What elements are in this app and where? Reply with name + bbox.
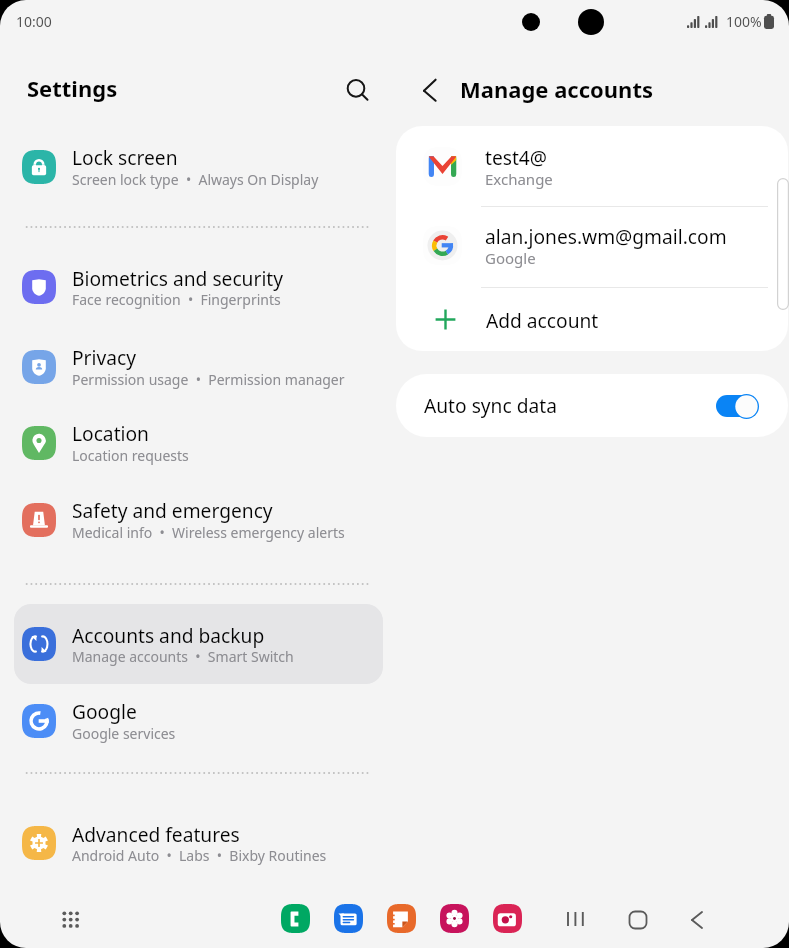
- staticText: 100%: [726, 12, 762, 31]
- button[interactable]: [396, 288, 788, 351]
- staticText: test4@: [485, 144, 548, 170]
- button[interactable]: [14, 604, 383, 684]
- staticText: Add account: [486, 307, 599, 333]
- staticText: Permission usage • Permission manager: [72, 370, 345, 389]
- button[interactable]: Home: [621, 903, 655, 937]
- staticText: Exchange: [485, 169, 553, 189]
- button[interactable]: Notes: [387, 904, 416, 933]
- staticText: Accounts and backup: [72, 622, 265, 648]
- button[interactable]: Phone: [281, 904, 310, 933]
- button[interactable]: [14, 803, 383, 883]
- button[interactable]: Back: [683, 903, 717, 937]
- button[interactable]: [396, 126, 788, 206]
- staticText: 10:00: [16, 12, 52, 31]
- staticText: Google services: [72, 724, 176, 743]
- staticText: Lock screen: [72, 144, 178, 170]
- button[interactable]: Messages: [334, 904, 363, 933]
- button[interactable]: Gallery: [440, 904, 469, 933]
- staticText: Manage accounts • Smart Switch: [72, 647, 294, 666]
- button[interactable]: Apps: [53, 902, 89, 938]
- staticText: Screen lock type • Always On Display: [72, 170, 319, 189]
- button[interactable]: Camera: [493, 904, 522, 933]
- staticText: Medical info • Wireless emergency alerts: [72, 523, 345, 542]
- staticText: Safety and emergency: [72, 497, 273, 523]
- staticText: Location: [72, 420, 149, 446]
- button[interactable]: [14, 681, 383, 761]
- button[interactable]: Search: [336, 68, 376, 108]
- button[interactable]: [14, 480, 383, 560]
- staticText: Manage accounts: [460, 74, 653, 104]
- staticText: Face recognition • Fingerprints: [72, 290, 281, 309]
- button[interactable]: [14, 403, 383, 483]
- button[interactable]: [396, 205, 788, 285]
- staticText: Advanced features: [72, 821, 240, 847]
- staticText: Google: [485, 248, 536, 268]
- staticText: Google: [72, 698, 137, 724]
- staticText: alan.jones.wm@gmail.com: [485, 223, 727, 249]
- staticText: Android Auto • Labs • Bixby Routines: [72, 846, 327, 865]
- staticText: Privacy: [72, 344, 136, 370]
- staticText: Auto sync data: [424, 392, 557, 418]
- staticText: Biometrics and security: [72, 265, 284, 291]
- button[interactable]: [14, 247, 383, 327]
- button[interactable]: [14, 127, 383, 207]
- staticText: Settings: [27, 73, 118, 103]
- button[interactable]: [396, 374, 788, 437]
- staticText: Location requests: [72, 446, 189, 465]
- button[interactable]: Recents: [559, 903, 593, 937]
- button[interactable]: [14, 327, 383, 407]
- button[interactable]: Back: [404, 70, 444, 110]
